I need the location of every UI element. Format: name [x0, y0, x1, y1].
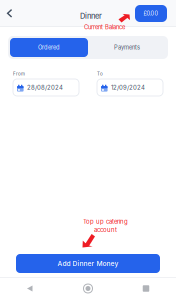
button[interactable]: 28/08/2024	[13, 79, 79, 96]
button[interactable]: Back	[0, 0, 20, 27]
staticText: Current Balance	[84, 23, 125, 31]
button[interactable]: 12/09/2024	[97, 79, 163, 96]
staticText: 28/08/2024	[27, 84, 63, 91]
staticText: From	[13, 71, 25, 76]
staticText: Ordered	[38, 44, 60, 51]
button[interactable]: Ordered	[10, 38, 88, 57]
staticText: To	[97, 71, 103, 76]
staticText: 12/09/2024	[111, 84, 145, 91]
button[interactable]: Back	[1, 277, 59, 300]
staticText: Add Dinner Money	[57, 259, 118, 268]
staticText: Top up catering	[83, 218, 128, 225]
button[interactable]: £0.00	[135, 5, 167, 22]
button[interactable]: Add Dinner Money	[16, 254, 160, 273]
button[interactable]: Payments	[88, 38, 166, 57]
button[interactable]: Home	[59, 277, 117, 300]
staticText: Dinner	[80, 12, 102, 21]
staticText: £0.00	[143, 10, 158, 17]
staticText: Payments	[114, 44, 140, 51]
staticText: account	[94, 226, 117, 234]
button[interactable]: Recents	[117, 277, 175, 300]
